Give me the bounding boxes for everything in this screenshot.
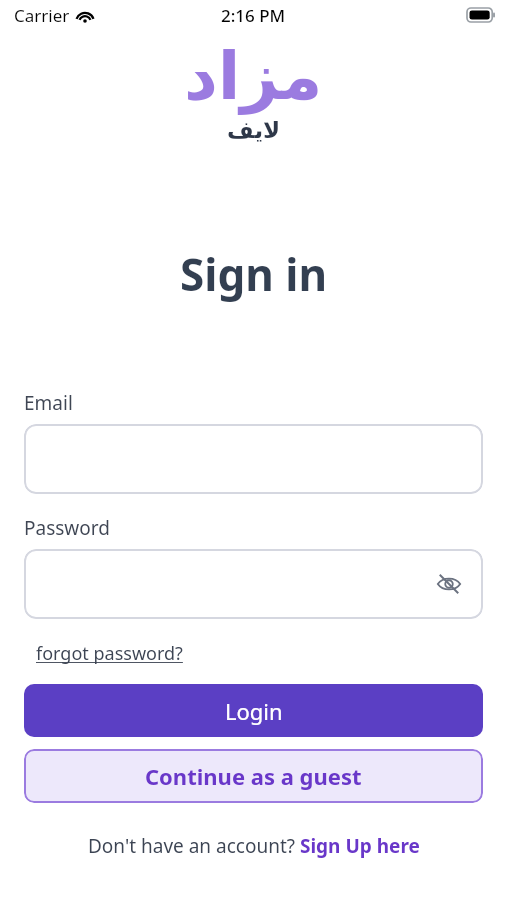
button[interactable]: Login	[24, 684, 483, 737]
staticText: 2:16 PM	[221, 4, 286, 27]
staticText: forgot password?	[36, 641, 183, 666]
staticText: Continue as a guest	[145, 761, 362, 791]
button[interactable]: Continue as a guest	[24, 749, 483, 803]
button[interactable]: Don't have an account? Sign Up here	[0, 833, 507, 859]
button[interactable]: Show password	[24, 549, 483, 619]
staticText: Carrier	[14, 4, 70, 27]
staticText: Sign in	[0, 244, 507, 304]
button[interactable]: forgot password?	[36, 641, 183, 666]
button[interactable]	[24, 424, 483, 494]
staticText: مزاد	[184, 38, 323, 115]
staticText: Don't have an account? Sign Up here	[88, 833, 420, 859]
staticText: Login	[225, 696, 283, 726]
staticText: Email	[24, 390, 73, 416]
button[interactable]: Show password	[433, 568, 465, 600]
staticText: Password	[24, 515, 110, 541]
staticText: لايف	[227, 117, 281, 144]
